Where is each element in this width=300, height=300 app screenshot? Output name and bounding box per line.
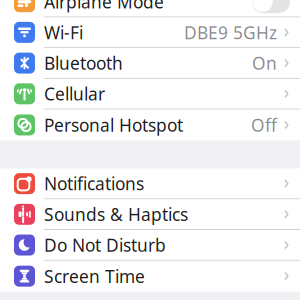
- button[interactable]: Personal Hotspot: [0, 110, 300, 140]
- button[interactable]: Do Not Disturb: [0, 230, 300, 261]
- button[interactable]: Sounds & Haptics: [0, 199, 300, 230]
- button[interactable]: Notifications: [0, 169, 300, 199]
- staticText: DBE9 5GHz: [184, 21, 277, 44]
- staticText: Off: [251, 113, 277, 136]
- staticText: On: [252, 52, 277, 75]
- button[interactable]: Bluetooth: [0, 48, 300, 79]
- button[interactable]: Airplane Mode: [0, 0, 300, 17]
- staticText: Personal Hotspot: [44, 113, 183, 136]
- button[interactable]: Wi-Fi: [0, 17, 300, 48]
- staticText: Sounds & Haptics: [44, 203, 188, 226]
- staticText: Screen Time: [44, 265, 145, 288]
- staticText: Cellular: [44, 82, 105, 105]
- staticText: Do Not Disturb: [44, 233, 166, 256]
- button[interactable]: Screen Time: [0, 261, 300, 291]
- staticText: Wi-Fi: [44, 21, 83, 44]
- staticText: Notifications: [44, 172, 144, 195]
- button[interactable]: Cellular: [0, 79, 300, 110]
- staticText: Airplane Mode: [44, 0, 164, 13]
- staticText: Bluetooth: [44, 52, 123, 75]
